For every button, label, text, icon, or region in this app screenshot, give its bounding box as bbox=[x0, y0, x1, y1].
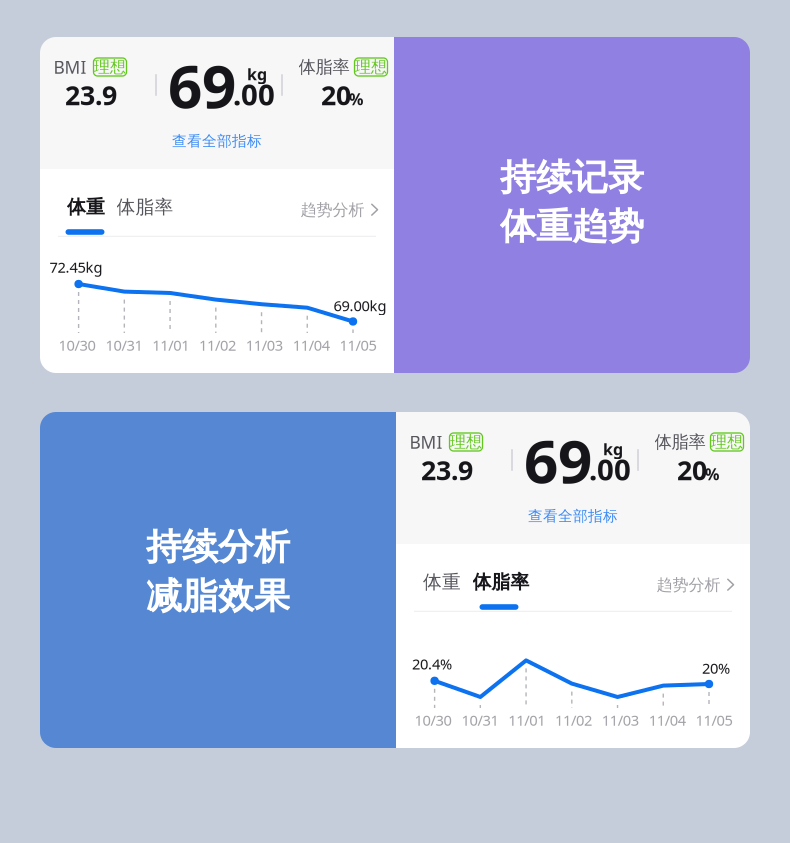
button[interactable]: 趋势分析 bbox=[294, 194, 385, 226]
staticText: .00 bbox=[589, 449, 631, 488]
staticText: 11/04 bbox=[649, 710, 686, 730]
staticText: 23.9 bbox=[421, 452, 473, 488]
button[interactable]: 趋势分析 bbox=[650, 569, 741, 601]
staticText: kg bbox=[247, 63, 267, 85]
staticText: 持续分析 bbox=[146, 525, 290, 569]
staticText: 20 bbox=[321, 77, 351, 113]
button[interactable]: 体脂率 bbox=[468, 564, 533, 599]
staticText: 理想 bbox=[355, 57, 387, 77]
staticText: 体脂率 bbox=[116, 195, 173, 218]
staticText: 查看全部指标 bbox=[528, 507, 618, 525]
staticText: 10/30 bbox=[59, 335, 96, 355]
staticText: 趋势分析 bbox=[656, 575, 720, 595]
staticText: 趋势分析 bbox=[300, 200, 364, 220]
staticText: 69.00kg bbox=[333, 296, 386, 315]
staticText: 11/03 bbox=[246, 335, 283, 355]
staticText: 69 bbox=[168, 45, 236, 125]
staticText: 减脂效果 bbox=[146, 574, 290, 618]
staticText: 23.9 bbox=[65, 77, 117, 113]
staticText: 理想 bbox=[450, 432, 482, 452]
staticText: 10/31 bbox=[461, 710, 498, 730]
staticText: 体重 bbox=[423, 570, 461, 593]
staticText: 11/04 bbox=[293, 335, 330, 355]
staticText: 69 bbox=[524, 420, 592, 500]
staticText: 11/01 bbox=[152, 335, 189, 355]
staticText: 11/01 bbox=[508, 710, 545, 730]
staticText: 10/30 bbox=[415, 710, 452, 730]
staticText: 查看全部指标 bbox=[172, 132, 262, 150]
staticText: 体重趋势 bbox=[500, 204, 644, 249]
staticText: % bbox=[705, 463, 719, 485]
button[interactable]: 查看全部指标 bbox=[520, 502, 626, 530]
staticText: 体脂率 bbox=[654, 431, 705, 453]
staticText: kg bbox=[603, 438, 623, 460]
staticText: 体重 bbox=[67, 195, 105, 218]
staticText: BMI bbox=[409, 430, 442, 453]
staticText: 11/03 bbox=[602, 710, 639, 730]
staticText: 11/02 bbox=[555, 710, 592, 730]
staticText: 体脂率 bbox=[298, 56, 349, 78]
staticText: 10/31 bbox=[105, 335, 142, 355]
staticText: 11/02 bbox=[199, 335, 236, 355]
staticText: 体脂率 bbox=[472, 570, 529, 593]
staticText: 20.4% bbox=[412, 654, 452, 674]
button[interactable]: 体重 bbox=[419, 564, 465, 599]
staticText: 理想 bbox=[711, 432, 743, 452]
staticText: .00 bbox=[233, 74, 275, 113]
button[interactable]: 体脂率 bbox=[112, 189, 177, 224]
staticText: BMI bbox=[53, 55, 86, 78]
staticText: % bbox=[349, 88, 363, 110]
staticText: 持续记录 bbox=[500, 155, 644, 199]
staticText: 20% bbox=[702, 658, 730, 678]
staticText: 11/05 bbox=[339, 335, 376, 355]
staticText: 11/05 bbox=[695, 710, 732, 730]
staticText: 72.45kg bbox=[50, 257, 103, 277]
button[interactable]: 体重 bbox=[63, 189, 109, 224]
button[interactable]: 查看全部指标 bbox=[164, 127, 270, 155]
staticText: 20 bbox=[677, 452, 707, 488]
staticText: 理想 bbox=[94, 57, 126, 77]
